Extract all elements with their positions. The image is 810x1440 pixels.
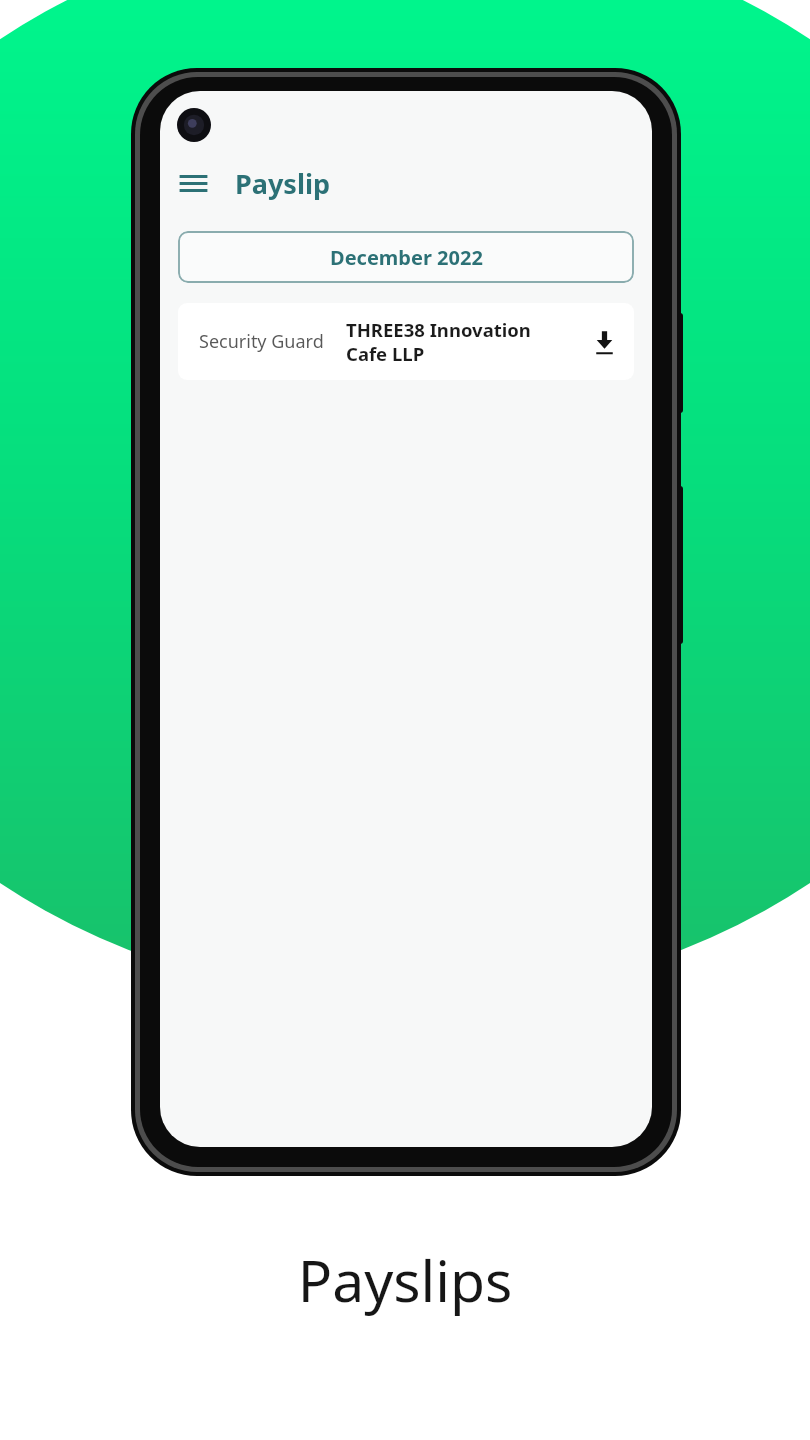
staticText: THREE38 Innovation Cafe LLP [346, 317, 531, 366]
button[interactable]: Open navigation menu [168, 158, 218, 208]
button[interactable]: December 2022 [178, 231, 634, 283]
button[interactable]: Download payslip [578, 316, 630, 368]
staticText: Security Guard [199, 329, 324, 354]
staticText: December 2022 [330, 244, 483, 271]
button[interactable]: Security Guard [178, 303, 634, 380]
staticText: Payslip [235, 165, 331, 202]
staticText: Payslips [0, 1241, 810, 1319]
